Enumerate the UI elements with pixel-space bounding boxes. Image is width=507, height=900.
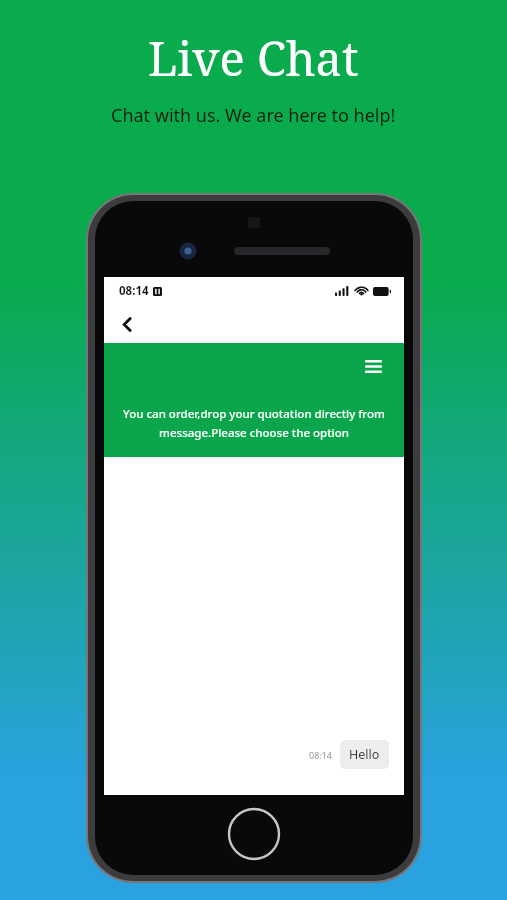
button[interactable]: Hello [340, 740, 389, 769]
staticText: 08:14 [309, 749, 333, 761]
staticText: 08:14 [119, 283, 149, 299]
staticText: Chat with us. We are here to help! [111, 103, 396, 128]
staticText: Hello [349, 746, 380, 763]
staticText: You can order,drop your quotation direct… [117, 406, 391, 440]
button[interactable]: Menu [358, 351, 388, 381]
button[interactable]: Home [227, 807, 281, 861]
button[interactable]: Back [112, 309, 142, 339]
staticText: Live Chat [148, 26, 359, 90]
